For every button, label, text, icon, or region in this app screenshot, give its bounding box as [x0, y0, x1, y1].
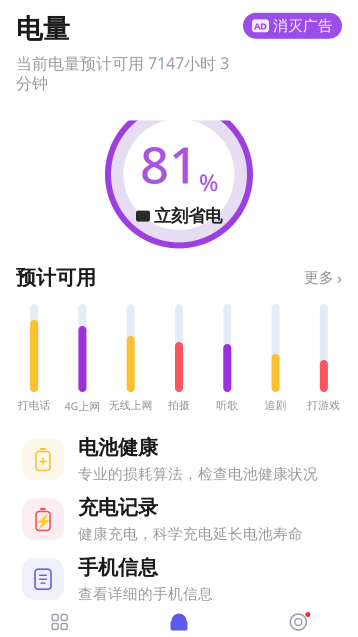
staticText: 预计可用	[16, 265, 96, 290]
staticText: ⚡	[34, 513, 51, 529]
staticText: 充电记录	[78, 495, 158, 520]
staticText: 打电话	[18, 399, 51, 412]
staticText: 电池健康	[78, 435, 158, 460]
staticText: 电量	[16, 13, 70, 46]
button[interactable]: ⚡	[0, 489, 358, 549]
staticText: 专业的损耗算法，检查电池健康状况	[78, 465, 318, 483]
button[interactable]: 电量	[119, 609, 239, 637]
button[interactable]: 设置	[239, 609, 358, 637]
staticText: AD	[254, 20, 267, 32]
staticText: +	[39, 451, 47, 471]
button[interactable]: 更多	[304, 267, 342, 288]
staticText: 健康充电，科学充电延长电池寿命	[78, 525, 303, 543]
staticText: 81	[140, 130, 198, 197]
staticText: 消灭广告	[273, 17, 333, 35]
staticText: %	[199, 167, 218, 197]
staticText: 更多	[304, 269, 334, 287]
staticText: 听歌	[216, 399, 238, 412]
staticText: ›	[337, 267, 342, 288]
staticText: 手机信息	[78, 555, 158, 580]
staticText: 拍摄	[168, 399, 190, 412]
staticText: 无线上网	[109, 399, 153, 412]
staticText: 当前电量预计可用 7147小时 3分钟	[16, 52, 229, 93]
staticText: 打游戏	[307, 399, 340, 412]
staticText: 4G上网	[64, 399, 100, 413]
button[interactable]: AD	[243, 13, 342, 39]
button[interactable]: +	[0, 429, 358, 489]
staticText: 追剧	[265, 399, 287, 412]
button[interactable]: 模式	[0, 609, 119, 637]
staticText: 查看详细的手机信息	[78, 585, 213, 603]
staticText: 立刻省电	[154, 205, 222, 227]
button[interactable]: 手机信息	[0, 549, 358, 609]
button[interactable]: 立刻省电	[136, 205, 222, 227]
